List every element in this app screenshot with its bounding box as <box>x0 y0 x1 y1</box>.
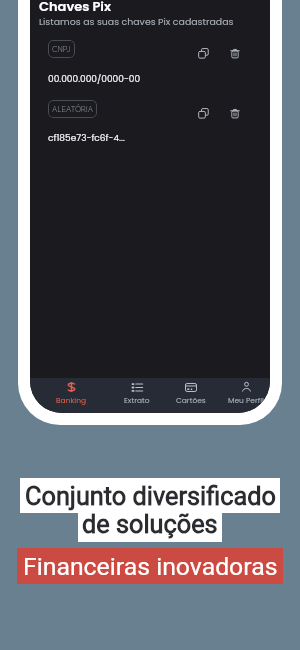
staticText: Financeiras inovadoras <box>23 552 278 581</box>
staticText: 00.000.000/0000-00 <box>48 73 141 86</box>
button[interactable]: Excluir chave <box>226 105 243 122</box>
staticText: Listamos as suas chaves Pix cadastradas <box>39 15 234 28</box>
button[interactable]: Extrato <box>110 378 164 413</box>
button[interactable]: CNPJ <box>48 40 75 58</box>
staticText: Meu Perfil <box>228 395 264 405</box>
staticText: Banking <box>56 395 87 405</box>
staticText: CNPJ <box>52 44 71 54</box>
staticText: de soluções <box>82 510 218 539</box>
staticText: Chaves Pix <box>39 0 111 15</box>
button[interactable]: Cartões <box>164 378 218 413</box>
staticText: Extrato <box>124 395 150 405</box>
button[interactable]: ALEATÓRIA <box>48 100 97 118</box>
button[interactable]: Copiar chave <box>195 105 212 122</box>
staticText: ALEATÓRIA <box>52 104 93 114</box>
button[interactable]: Excluir chave <box>226 45 243 62</box>
button[interactable]: Meu Perfil <box>219 378 270 413</box>
staticText: cf185e73-fc6f-4... <box>48 132 125 145</box>
button[interactable]: Copiar chave <box>195 45 212 62</box>
staticText: Cartões <box>176 395 206 405</box>
staticText: Conjunto diversificado <box>25 482 276 512</box>
button[interactable]: Banking <box>44 378 98 413</box>
